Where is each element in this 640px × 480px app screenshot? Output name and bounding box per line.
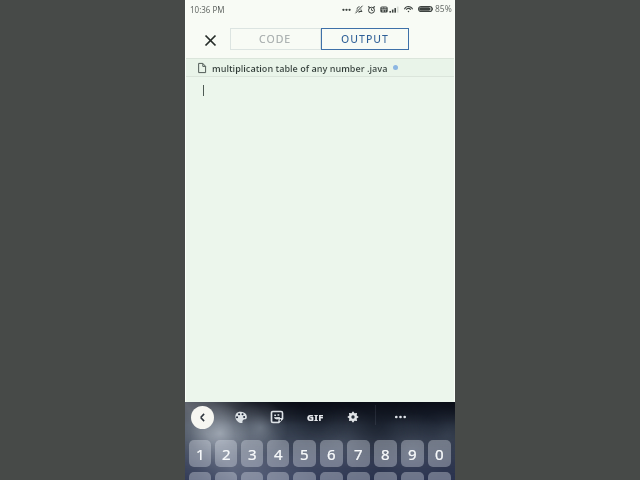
button[interactable]: 4 [267,440,289,467]
staticText: 1 [196,444,205,464]
button[interactable]: y [320,472,343,480]
button[interactable]: u [347,472,370,480]
button[interactable]: 2 [215,440,237,467]
staticText: 85% [435,3,452,15]
button[interactable]: Back [191,406,214,429]
button[interactable]: Theme [230,406,252,428]
staticText: 0 [435,444,444,464]
button[interactable]: GIF [304,406,327,429]
staticText: 2 [222,444,231,464]
button[interactable]: 8 [374,440,397,467]
staticText: CODE [259,32,292,46]
button[interactable]: w [215,472,237,480]
staticText: 5 [300,444,309,464]
staticText: 8 [381,444,390,464]
staticText: 10:36 PM [190,4,225,15]
button[interactable]: Close [199,29,221,51]
button[interactable]: p [428,472,451,480]
button[interactable]: t [293,472,316,480]
button[interactable]: i [374,472,397,480]
button[interactable]: CODE [230,28,321,50]
staticText: 7 [354,444,363,464]
staticText: 6 [327,444,336,464]
staticText: 4 [274,444,283,464]
staticText: 3 [248,444,257,464]
button[interactable]: q [189,472,211,480]
button[interactable]: 0 [428,440,451,467]
staticText: 9 [408,444,417,464]
button[interactable]: 3 [241,440,263,467]
button[interactable]: e [241,472,263,480]
staticText: multiplication table of any number .java [212,62,388,74]
button[interactable]: 7 [347,440,370,467]
button[interactable]: Settings [342,406,364,428]
staticText: GIF [307,411,324,424]
button[interactable]: Stickers [266,406,288,428]
button[interactable]: r [267,472,289,480]
button[interactable]: 9 [401,440,424,467]
staticText: OUTPUT [341,32,389,46]
button[interactable]: 1 [189,440,211,467]
button[interactable]: o [401,472,424,480]
button[interactable]: More options [389,406,411,428]
button[interactable]: 6 [320,440,343,467]
button[interactable]: OUTPUT [321,28,409,50]
button[interactable]: 5 [293,440,316,467]
